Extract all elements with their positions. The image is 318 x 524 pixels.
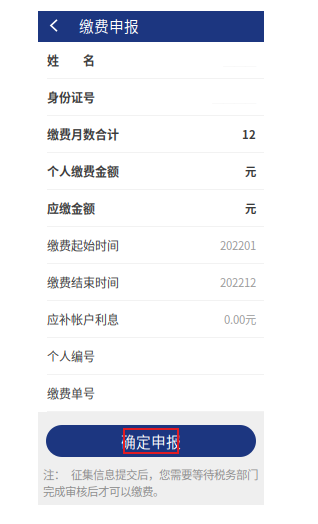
staticText: 元 bbox=[245, 163, 256, 179]
staticText: 缴费结束时间 bbox=[47, 273, 119, 291]
staticText: 元 bbox=[245, 200, 256, 216]
staticText: 确定申报 bbox=[121, 430, 181, 452]
staticText: 姓 名 bbox=[47, 51, 95, 69]
staticText: 12 bbox=[242, 126, 256, 142]
button[interactable]: Back bbox=[38, 10, 70, 41]
staticText: 0.00元 bbox=[224, 311, 256, 327]
staticText: 缴费起始时间 bbox=[47, 236, 119, 254]
staticText: 202212 bbox=[220, 274, 256, 290]
staticText: 应缴金额 bbox=[47, 199, 95, 217]
staticText: 身份证号 bbox=[47, 88, 95, 106]
staticText: 注： 征集信息提交后，您需要等待税务部门完成审核后才可以缴费。 bbox=[43, 466, 258, 499]
staticText: 个人编号 bbox=[47, 347, 95, 365]
staticText: 缴费申报 bbox=[79, 15, 139, 36]
staticText: 缴费月数合计 bbox=[47, 125, 119, 143]
staticText: 个人缴费金额 bbox=[47, 162, 119, 180]
staticText: 应补帐户利息 bbox=[47, 310, 119, 328]
button[interactable]: 确定申报 bbox=[46, 425, 256, 457]
staticText: 缴费单号 bbox=[47, 384, 95, 402]
staticText: 202201 bbox=[220, 237, 256, 253]
